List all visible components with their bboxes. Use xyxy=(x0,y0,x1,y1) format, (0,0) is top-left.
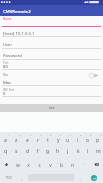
staticText: n xyxy=(71,162,74,168)
staticText: Mac xyxy=(3,80,12,86)
staticText: o xyxy=(86,137,90,144)
button[interactable]: Toggle Mac xyxy=(89,73,99,78)
button[interactable]: x xyxy=(23,158,34,171)
staticText: User xyxy=(3,42,13,48)
button[interactable]: Password xyxy=(0,49,103,60)
staticText: ' xyxy=(83,162,84,168)
staticText: i xyxy=(77,137,79,144)
staticText: , xyxy=(21,175,23,181)
staticText: y xyxy=(57,137,60,144)
button[interactable]: q xyxy=(0,145,11,158)
staticText: 7 xyxy=(70,134,72,137)
staticText: f xyxy=(37,148,39,155)
staticText: l xyxy=(87,148,89,155)
button[interactable]: 0 xyxy=(93,132,103,145)
staticText: 4 xyxy=(40,134,42,137)
button[interactable]: [host] 10.1.0.6.1 xyxy=(0,27,103,37)
staticText: 6 xyxy=(60,134,62,137)
staticText: 3 xyxy=(30,134,32,137)
button[interactable]: User xyxy=(0,38,103,49)
staticText: one xyxy=(49,106,55,110)
button[interactable]: Port xyxy=(0,59,103,70)
button[interactable]: , xyxy=(17,171,27,183)
staticText: 8 xyxy=(80,134,82,137)
staticText: x xyxy=(27,162,30,168)
staticText: 9 xyxy=(90,134,92,137)
button[interactable]: h xyxy=(53,145,63,158)
button[interactable]: 3 xyxy=(22,132,33,145)
staticText: Wifi Port xyxy=(3,88,15,92)
staticText: [host] 10.1.0.6.1 xyxy=(3,31,35,37)
button[interactable]: Shift xyxy=(0,158,12,171)
button[interactable]: c xyxy=(34,158,45,171)
staticText: 80 xyxy=(3,64,8,70)
staticText: 5 xyxy=(50,134,52,137)
staticText: 0 xyxy=(3,91,6,97)
staticText: g xyxy=(46,148,50,155)
button[interactable]: 6 xyxy=(53,132,63,145)
staticText: c xyxy=(38,162,41,168)
staticText: CMVRemote2 xyxy=(3,8,31,14)
staticText: s xyxy=(15,148,18,155)
button[interactable]: d xyxy=(22,145,33,158)
button[interactable]: j xyxy=(63,145,73,158)
button[interactable]: Name xyxy=(0,15,103,27)
staticText: Port xyxy=(3,61,9,65)
button[interactable]: 7 xyxy=(63,132,73,145)
button[interactable]: b xyxy=(56,158,67,171)
button[interactable]: w xyxy=(12,158,23,171)
button[interactable]: 4 xyxy=(33,132,43,145)
staticText: b xyxy=(60,162,63,168)
staticText: 0 xyxy=(100,134,102,137)
button[interactable]: 9 xyxy=(83,132,93,145)
staticText: 1 xyxy=(8,134,10,137)
staticText: m xyxy=(96,148,101,155)
staticText: 2 xyxy=(19,134,21,137)
staticText: u xyxy=(66,137,70,144)
button[interactable]: f xyxy=(33,145,43,158)
button[interactable]: Mac xyxy=(0,70,103,86)
button[interactable]: s xyxy=(11,145,22,158)
button[interactable]: Backspace xyxy=(89,158,103,171)
staticText: e xyxy=(26,137,29,144)
staticText: j xyxy=(67,148,69,155)
button[interactable]: ' xyxy=(78,158,89,171)
button[interactable]: 5 xyxy=(43,132,53,145)
staticText: r xyxy=(37,137,40,144)
button[interactable]: ?123 xyxy=(0,171,17,183)
staticText: d xyxy=(26,148,30,155)
button[interactable]: Wifi Port xyxy=(0,86,103,97)
staticText: Password xyxy=(3,53,22,59)
button[interactable]: k xyxy=(73,145,83,158)
button[interactable]: 8 xyxy=(73,132,83,145)
staticText: ?123 xyxy=(5,176,12,180)
staticText: t xyxy=(47,137,49,144)
staticText: a xyxy=(4,137,7,144)
staticText: v xyxy=(49,162,52,168)
button[interactable]: Enter xyxy=(85,171,103,183)
button[interactable]: l xyxy=(83,145,93,158)
button[interactable]: 1 xyxy=(0,132,11,145)
staticText: w xyxy=(16,162,20,168)
button[interactable]: n xyxy=(67,158,78,171)
staticText: . xyxy=(79,175,81,181)
staticText: Mac xyxy=(3,73,9,77)
button[interactable]: g xyxy=(43,145,53,158)
staticText: q xyxy=(4,148,8,155)
staticText: z xyxy=(15,137,18,144)
button[interactable]: v xyxy=(45,158,56,171)
staticText: p xyxy=(96,137,100,144)
staticText: Name xyxy=(3,17,12,21)
staticText: h xyxy=(56,148,60,155)
button[interactable]: 2 xyxy=(11,132,22,145)
staticText: k xyxy=(77,148,80,155)
button[interactable]: m xyxy=(93,145,103,158)
